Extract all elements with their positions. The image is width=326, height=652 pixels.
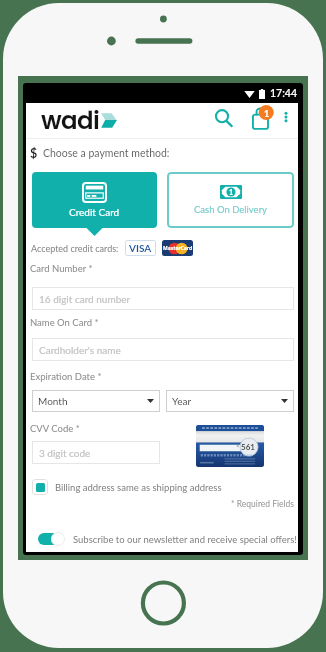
staticText: Expiration Date * bbox=[30, 371, 102, 382]
staticText: Card Number * bbox=[30, 263, 93, 274]
staticText: Name On Card * bbox=[30, 317, 99, 328]
staticText: 1 bbox=[264, 108, 270, 119]
button[interactable]: 1 bbox=[167, 172, 294, 228]
button[interactable]: Year bbox=[166, 390, 294, 412]
button[interactable]: Credit Card bbox=[32, 172, 157, 228]
button[interactable]: 3 digit code bbox=[32, 441, 160, 464]
staticText: 16 digit card number bbox=[39, 293, 131, 305]
staticText: 1 bbox=[229, 188, 234, 196]
button[interactable]: 16 digit card number bbox=[32, 287, 294, 310]
staticText: Year bbox=[172, 395, 192, 407]
staticText: 561 bbox=[241, 442, 255, 452]
button[interactable]: Billing address same as shipping address bbox=[32, 479, 222, 495]
button[interactable]: More options bbox=[276, 107, 295, 126]
button[interactable]: Shopping bag bbox=[248, 105, 274, 131]
staticText: Cardholder's name bbox=[39, 344, 121, 356]
staticText: < bbox=[236, 442, 240, 449]
staticText: Billing address same as shipping address bbox=[55, 482, 222, 493]
staticText: Credit Card bbox=[69, 206, 120, 218]
button[interactable]: Subscribe to our newsletter and receive … bbox=[37, 532, 297, 546]
staticText: 17:44 bbox=[270, 87, 298, 100]
staticText: Cash On Delivery bbox=[194, 204, 267, 215]
button[interactable]: Search bbox=[211, 105, 237, 131]
staticText: 3 digit code bbox=[39, 447, 91, 459]
staticText: wadi bbox=[41, 103, 100, 137]
staticText: Accepted credit cards: bbox=[31, 243, 119, 254]
staticText: VISA bbox=[129, 242, 152, 254]
staticText: Month bbox=[38, 395, 68, 407]
button[interactable]: Month bbox=[32, 390, 160, 412]
staticText: $ bbox=[30, 146, 38, 161]
staticText: CVV Code * bbox=[30, 423, 80, 434]
button[interactable]: Cardholder's name bbox=[32, 338, 294, 361]
staticText: MasterCard bbox=[163, 245, 193, 252]
staticText: Choose a payment method: bbox=[43, 147, 170, 160]
staticText: * Required Fields bbox=[26, 499, 294, 509]
staticText: Subscribe to our newsletter and receive … bbox=[73, 534, 297, 545]
